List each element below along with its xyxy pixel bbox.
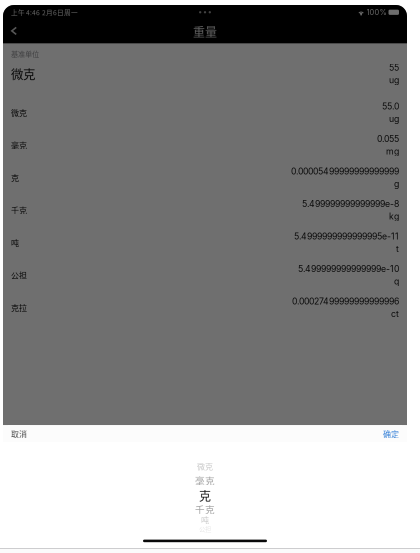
staticText: 55 [389, 62, 399, 73]
staticText: 确定 [383, 428, 399, 439]
staticText: 5.4999999999999995e-11 [294, 231, 399, 241]
staticText: 千克 [11, 204, 27, 216]
staticText: 克 [199, 487, 211, 504]
staticText: 微克 [11, 65, 35, 83]
staticText: 微克 [11, 107, 27, 118]
staticText: 0.00005499999999999999 [291, 166, 399, 176]
staticText: ct [391, 308, 399, 319]
staticText: 0.00027499999999999996 [292, 296, 399, 306]
button[interactable]: 毫克 [3, 472, 407, 488]
staticText: 毫克 [195, 473, 215, 487]
staticText: 5.499999999999999e-8 [302, 198, 399, 209]
staticText: q [394, 276, 399, 286]
staticText: 重量 [193, 23, 217, 40]
staticText: 微克 [197, 460, 213, 472]
button[interactable]: 确定 [380, 425, 402, 442]
button[interactable]: 克 [3, 161, 407, 194]
button[interactable]: 千克 [3, 194, 407, 226]
staticText: kg [389, 211, 399, 221]
button[interactable]: 微克 [3, 64, 407, 96]
button[interactable]: 毫克 [3, 129, 407, 161]
button[interactable]: 千克 [3, 503, 407, 515]
staticText: 吨 [11, 237, 19, 248]
staticText: 取消 [11, 428, 27, 439]
staticText: 5.499999999999999e-10 [298, 263, 399, 274]
staticText: 公担 [199, 524, 211, 534]
button[interactable]: 取消 [8, 425, 30, 442]
staticText: 55.0 [382, 101, 399, 111]
button[interactable]: Back [4, 24, 24, 38]
button[interactable]: 微克 [3, 460, 407, 472]
staticText: 公担 [11, 269, 27, 281]
staticText: 0.055 [377, 133, 399, 144]
staticText: 基准单位 [11, 48, 39, 59]
staticText: ug [389, 113, 399, 124]
staticText: t [396, 243, 399, 254]
staticText: 克 [11, 172, 19, 183]
staticText: 吨 [201, 514, 209, 526]
staticText: mg [386, 146, 399, 156]
button[interactable]: 吨 [3, 226, 407, 259]
staticText: 100% [366, 8, 386, 17]
staticText: 上午 4:46 2月6日周一 [11, 7, 78, 17]
staticText: 千克 [195, 502, 215, 516]
button[interactable]: 克拉 [3, 291, 407, 324]
staticText: 克拉 [11, 302, 27, 313]
staticText: 毫克 [11, 139, 27, 151]
button[interactable]: 微克 [3, 96, 407, 129]
staticText: g [394, 178, 399, 189]
button[interactable]: 克 [3, 488, 407, 503]
staticText: ug [389, 75, 399, 85]
button[interactable]: 公担 [3, 259, 407, 291]
